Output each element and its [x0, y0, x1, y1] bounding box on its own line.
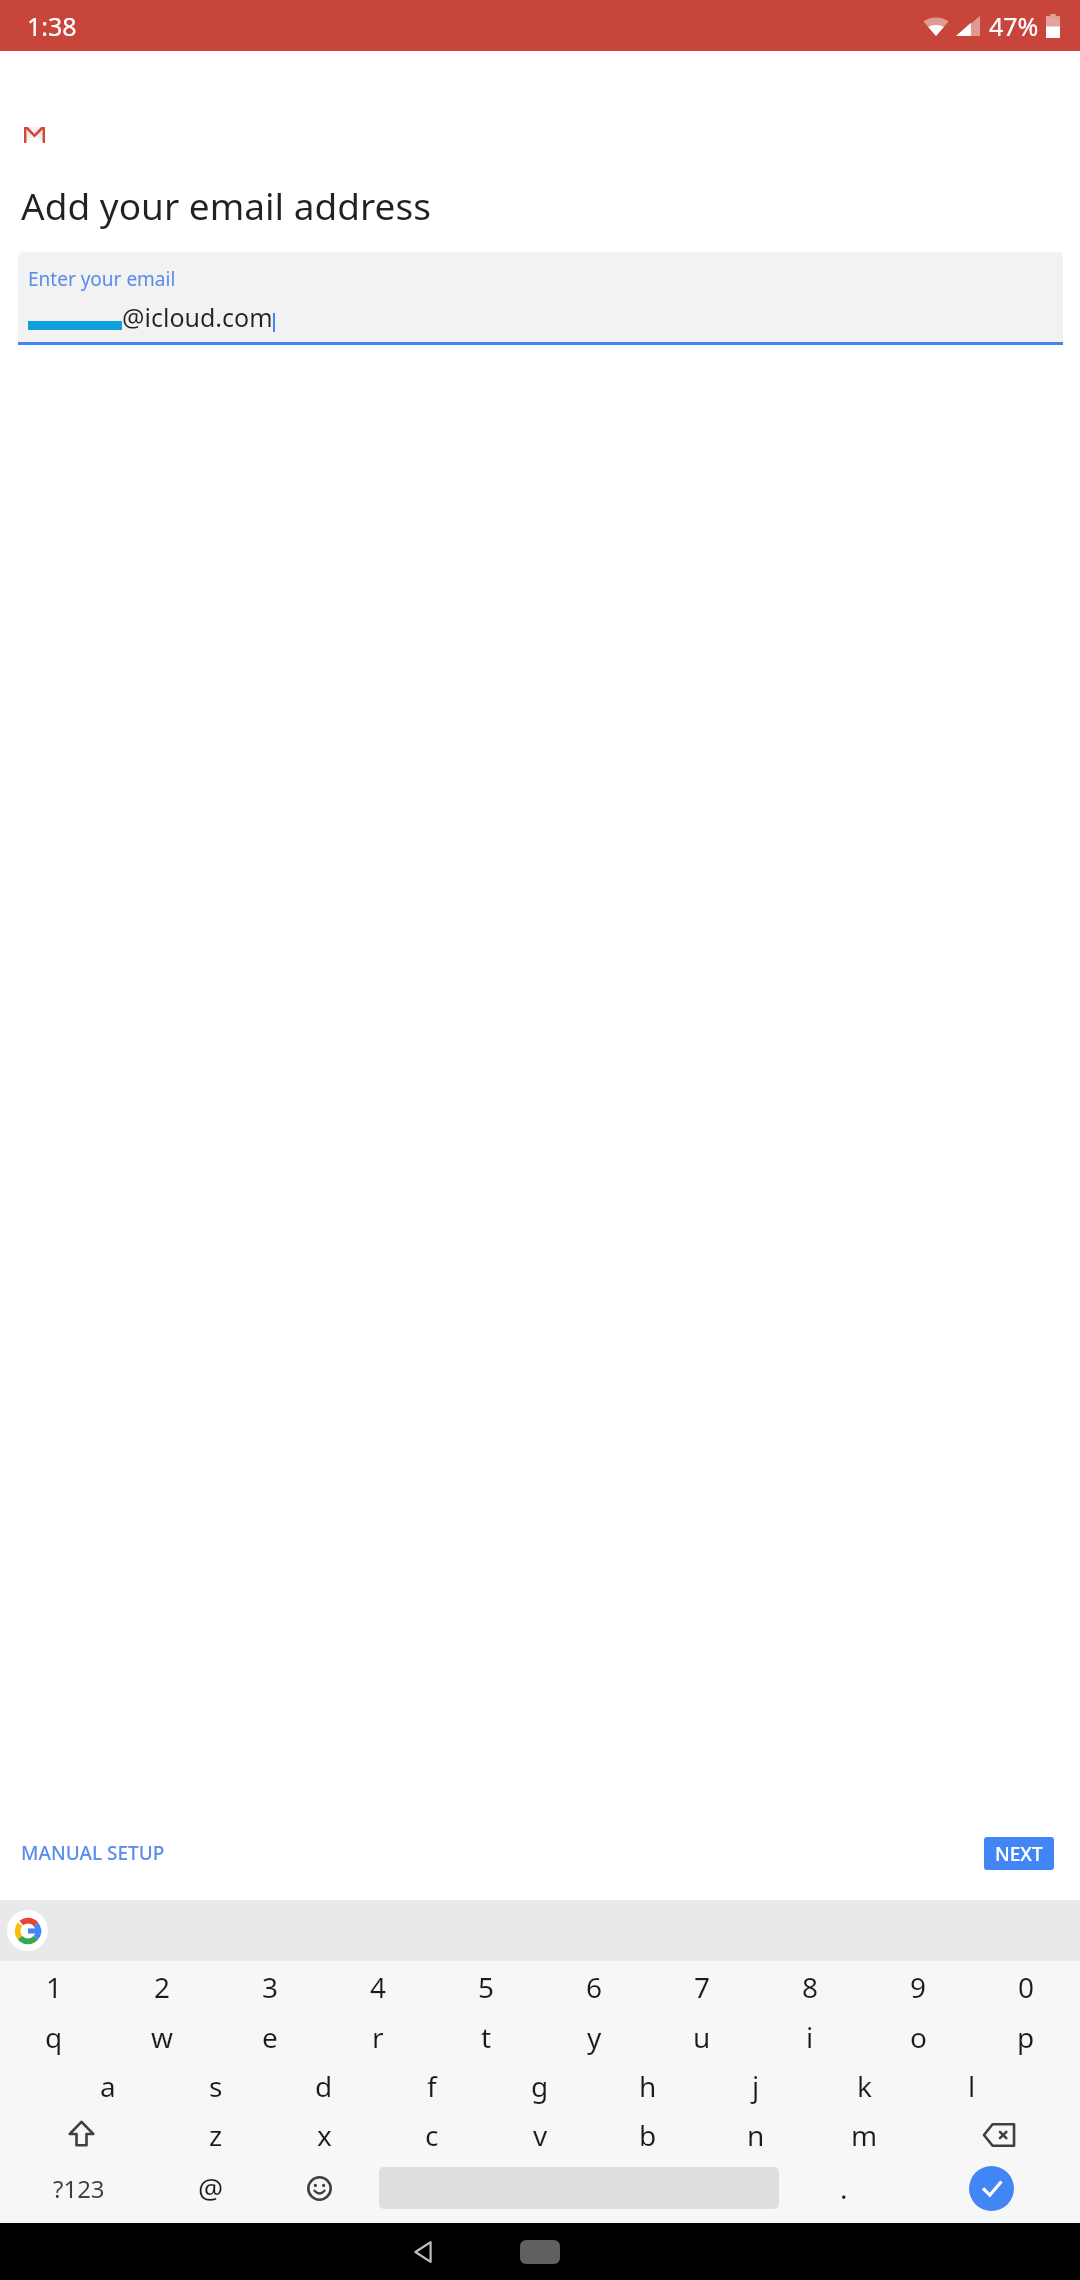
- staticText: v: [533, 2116, 548, 2154]
- staticText: 6: [586, 1968, 603, 2006]
- staticText: x: [317, 2116, 332, 2154]
- staticText: a: [100, 2067, 116, 2105]
- staticText: ?123: [53, 2172, 105, 2205]
- button[interactable]: d: [270, 2061, 378, 2110]
- button[interactable]: u: [648, 2012, 756, 2061]
- staticText: 47%: [989, 9, 1039, 43]
- button[interactable]: a: [54, 2061, 162, 2110]
- staticText: g: [531, 2067, 549, 2105]
- staticText: d: [315, 2067, 333, 2105]
- button[interactable]: 1: [0, 1961, 108, 2012]
- staticText: q: [45, 2018, 63, 2056]
- button[interactable]: Backspace: [918, 2110, 1080, 2159]
- staticText: r: [372, 2018, 384, 2056]
- staticText: 5: [478, 1968, 495, 2006]
- button[interactable]: m: [810, 2110, 918, 2159]
- staticText: y: [587, 2018, 602, 2056]
- button[interactable]: q: [0, 2012, 108, 2061]
- button[interactable]: g: [486, 2061, 594, 2110]
- button[interactable]: Home: [516, 2228, 564, 2276]
- staticText: s: [209, 2067, 223, 2105]
- staticText: e: [262, 2018, 278, 2056]
- button[interactable]: x: [270, 2110, 378, 2159]
- button[interactable]: 5: [432, 1961, 540, 2012]
- staticText: k: [857, 2067, 872, 2105]
- button[interactable]: 0: [972, 1961, 1080, 2012]
- staticText: 9: [910, 1968, 927, 2006]
- staticText: u: [693, 2018, 711, 2056]
- button[interactable]: e: [216, 2012, 324, 2061]
- button[interactable]: 4: [324, 1961, 432, 2012]
- button[interactable]: 8: [756, 1961, 864, 2012]
- button[interactable]: h: [594, 2061, 702, 2110]
- button[interactable]: b: [594, 2110, 702, 2159]
- staticText: 1:38: [27, 9, 77, 43]
- staticText: c: [425, 2116, 439, 2154]
- staticText: t: [481, 2018, 492, 2056]
- button[interactable]: ?123: [0, 2159, 157, 2217]
- staticText: @: [198, 2169, 224, 2207]
- button[interactable]: t: [432, 2012, 540, 2061]
- button[interactable]: k: [810, 2061, 918, 2110]
- button[interactable]: i: [756, 2012, 864, 2061]
- button[interactable]: j: [702, 2061, 810, 2110]
- button[interactable]: p: [972, 2012, 1080, 2061]
- button[interactable]: c: [378, 2110, 486, 2159]
- button[interactable]: n: [702, 2110, 810, 2159]
- staticText: 2: [154, 1968, 171, 2006]
- button[interactable]: l: [918, 2061, 1026, 2110]
- staticText: m: [851, 2116, 878, 2154]
- button[interactable]: 6: [540, 1961, 648, 2012]
- staticText: o: [910, 2018, 927, 2056]
- staticText: h: [639, 2067, 657, 2105]
- staticText: w: [151, 2018, 174, 2056]
- staticText: j: [752, 2067, 760, 2105]
- staticText: i: [806, 2018, 814, 2056]
- staticText: NEXT: [995, 1841, 1043, 1867]
- button[interactable]: 9: [864, 1961, 972, 2012]
- button[interactable]: r: [324, 2012, 432, 2061]
- button[interactable]: Shift: [0, 2110, 162, 2159]
- staticText: b: [639, 2116, 657, 2154]
- button[interactable]: Enter your email: [18, 252, 1063, 342]
- staticText: 0: [1018, 1968, 1035, 2006]
- staticText: MANUAL SETUP: [21, 1840, 165, 1866]
- button[interactable]: Back: [399, 2228, 447, 2276]
- button[interactable]: Emoji: [265, 2159, 373, 2217]
- button[interactable]: Google: [7, 1910, 48, 1951]
- staticText: 1: [46, 1968, 63, 2006]
- staticText: Enter your email: [28, 266, 176, 292]
- button[interactable]: y: [540, 2012, 648, 2061]
- staticText: @icloud.com: [122, 300, 273, 334]
- button[interactable]: Enter: [903, 2159, 1080, 2217]
- staticText: z: [209, 2116, 223, 2154]
- button[interactable]: s: [162, 2061, 270, 2110]
- button[interactable]: .: [785, 2159, 903, 2217]
- button[interactable]: @: [157, 2159, 265, 2217]
- staticText: 7: [694, 1968, 711, 2006]
- staticText: p: [1017, 2018, 1035, 2056]
- staticText: 8: [802, 1968, 819, 2006]
- staticText: n: [747, 2116, 765, 2154]
- button[interactable]: z: [162, 2110, 270, 2159]
- button[interactable]: 3: [216, 1961, 324, 2012]
- button[interactable]: o: [864, 2012, 972, 2061]
- staticText: l: [968, 2067, 976, 2105]
- button[interactable]: v: [486, 2110, 594, 2159]
- button[interactable]: f: [378, 2061, 486, 2110]
- staticText: Add your email address: [21, 180, 431, 230]
- button[interactable]: w: [108, 2012, 216, 2061]
- staticText: .: [840, 2169, 848, 2207]
- button[interactable]: MANUAL SETUP: [21, 1832, 165, 1874]
- button[interactable]: NEXT: [984, 1837, 1054, 1870]
- staticText: 4: [370, 1968, 387, 2006]
- staticText: 3: [262, 1968, 279, 2006]
- button[interactable]: 2: [108, 1961, 216, 2012]
- staticText: f: [427, 2067, 437, 2105]
- button[interactable]: 7: [648, 1961, 756, 2012]
